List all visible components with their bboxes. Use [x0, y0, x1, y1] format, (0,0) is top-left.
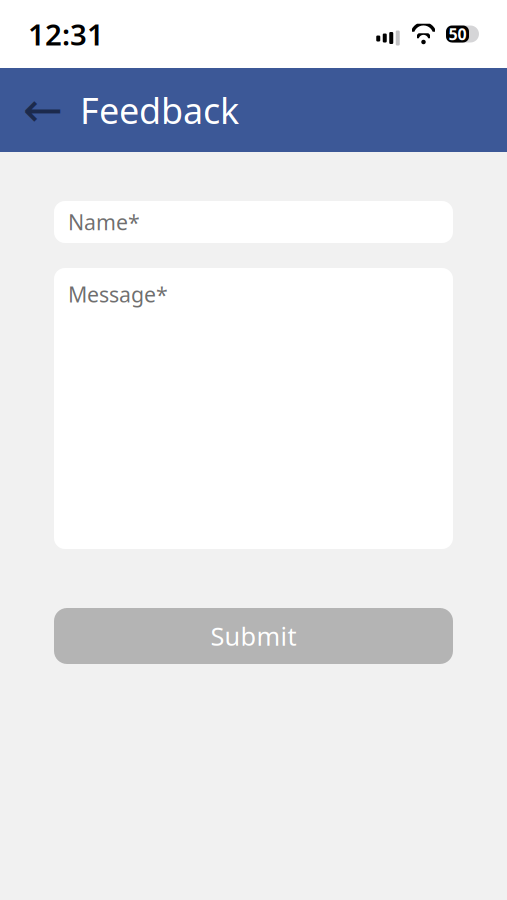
staticText: Feedback [80, 86, 239, 134]
staticText: Submit [210, 619, 296, 653]
staticText: 50 [448, 23, 466, 45]
staticText: Name* [68, 208, 140, 236]
button[interactable]: Name* [54, 201, 453, 243]
button[interactable]: Submit [54, 608, 453, 664]
button[interactable]: Back [20, 87, 66, 133]
button[interactable]: Message* [54, 268, 453, 549]
staticText: ← [23, 83, 63, 137]
staticText: 12:31 [28, 14, 104, 53]
staticText: Message* [68, 280, 168, 308]
